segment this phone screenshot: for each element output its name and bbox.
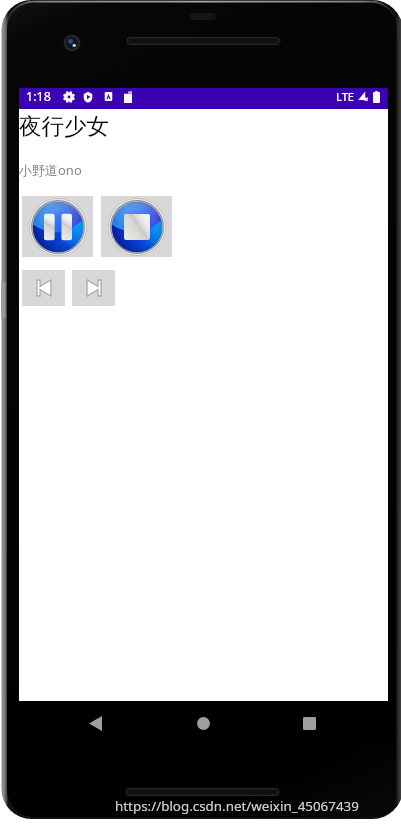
button[interactable]: Recent apps (285, 701, 333, 746)
staticText: https://blog.csdn.net/weixin_45067439 (115, 797, 359, 815)
staticText: 小野道ono (19, 161, 82, 179)
button[interactable]: Stop (101, 196, 172, 257)
button[interactable]: Home (179, 701, 227, 746)
staticText: LTE (336, 89, 354, 104)
button[interactable]: Back (71, 701, 119, 746)
staticText: 夜行少女 (19, 112, 109, 140)
button[interactable]: Pause (22, 196, 93, 257)
button[interactable]: Next track (72, 270, 115, 306)
staticText: 1:18 (26, 88, 51, 105)
button[interactable]: Previous track (22, 270, 65, 306)
